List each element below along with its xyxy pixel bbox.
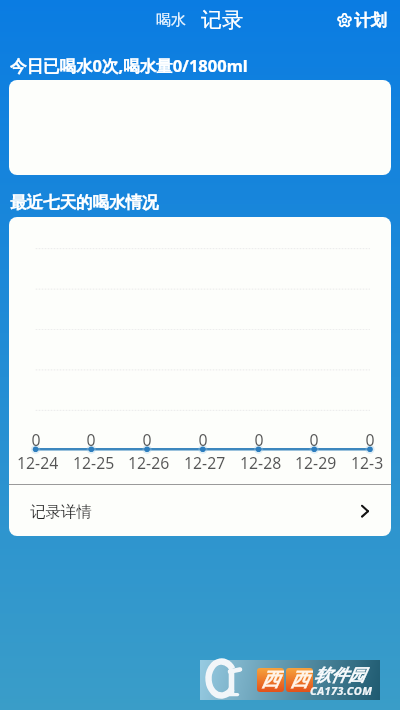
staticText: CA173.COM xyxy=(310,683,373,698)
button[interactable]: 记录 xyxy=(195,0,249,40)
button[interactable]: Plan settings xyxy=(333,0,391,40)
staticText: 喝水 xyxy=(156,11,186,30)
staticText: 12-3 xyxy=(351,452,384,474)
staticText: 0 xyxy=(294,429,334,451)
staticText: 0 xyxy=(350,429,390,451)
other: Open record details xyxy=(361,505,369,517)
staticText: 12-29 xyxy=(295,452,337,474)
staticText: 0 xyxy=(127,429,167,451)
staticText: 今日已喝水0次,喝水量0/1800ml xyxy=(10,54,248,77)
staticText: 西 xyxy=(290,668,309,692)
staticText: 记录 xyxy=(201,7,243,33)
staticText: 12-25 xyxy=(73,452,115,474)
staticText: 0 xyxy=(239,429,279,451)
staticText: 软件园 xyxy=(314,665,365,686)
button[interactable]: 记录详情 xyxy=(9,485,391,536)
staticText: 计划 xyxy=(354,10,387,31)
staticText: 12-24 xyxy=(17,452,59,474)
staticText: 12-26 xyxy=(128,452,170,474)
staticText: 记录详情 xyxy=(30,502,92,522)
other: Plan settings xyxy=(337,13,352,28)
staticText: 最近七天的喝水情况 xyxy=(10,192,159,213)
staticText: 12-27 xyxy=(184,452,226,474)
staticText: 0 xyxy=(183,429,223,451)
staticText: 12-28 xyxy=(240,452,282,474)
button[interactable]: 喝水 xyxy=(148,0,194,40)
staticText: 0 xyxy=(16,429,56,451)
staticText: 0 xyxy=(71,429,111,451)
staticText: 西 xyxy=(261,668,280,692)
